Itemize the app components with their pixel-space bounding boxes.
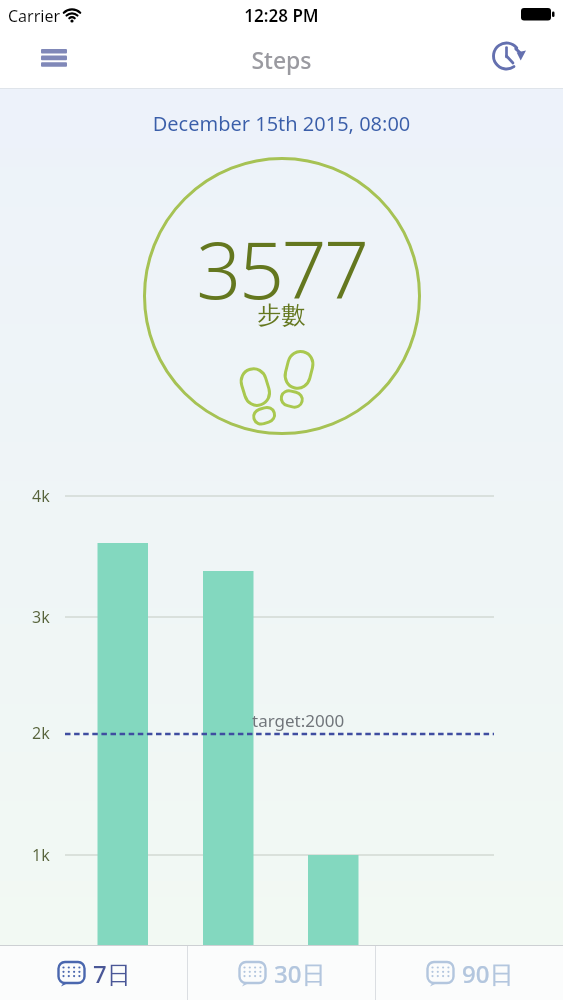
staticText: 90日 (462, 957, 514, 990)
button[interactable]: 7日 (0, 946, 187, 1000)
staticText: 2k (32, 722, 50, 744)
button[interactable]: 90日 (376, 946, 563, 1000)
staticText: 3577 (0, 215, 563, 323)
staticText: Carrier (8, 5, 61, 27)
button[interactable]: 30日 (188, 946, 375, 1000)
staticText: December 15th 2015, 08:00 (0, 110, 563, 137)
staticText: 步數 (0, 300, 563, 330)
staticText: 3k (32, 606, 50, 628)
staticText: Steps (0, 44, 563, 75)
staticText: 1k (32, 844, 50, 866)
staticText: 7日 (93, 957, 131, 990)
staticText: 4k (32, 485, 50, 507)
button[interactable] (31, 38, 77, 78)
staticText: 12:28 PM (0, 4, 563, 27)
staticText: target:2000 (252, 709, 345, 732)
staticText: 30日 (274, 957, 326, 990)
button[interactable] (489, 36, 531, 76)
